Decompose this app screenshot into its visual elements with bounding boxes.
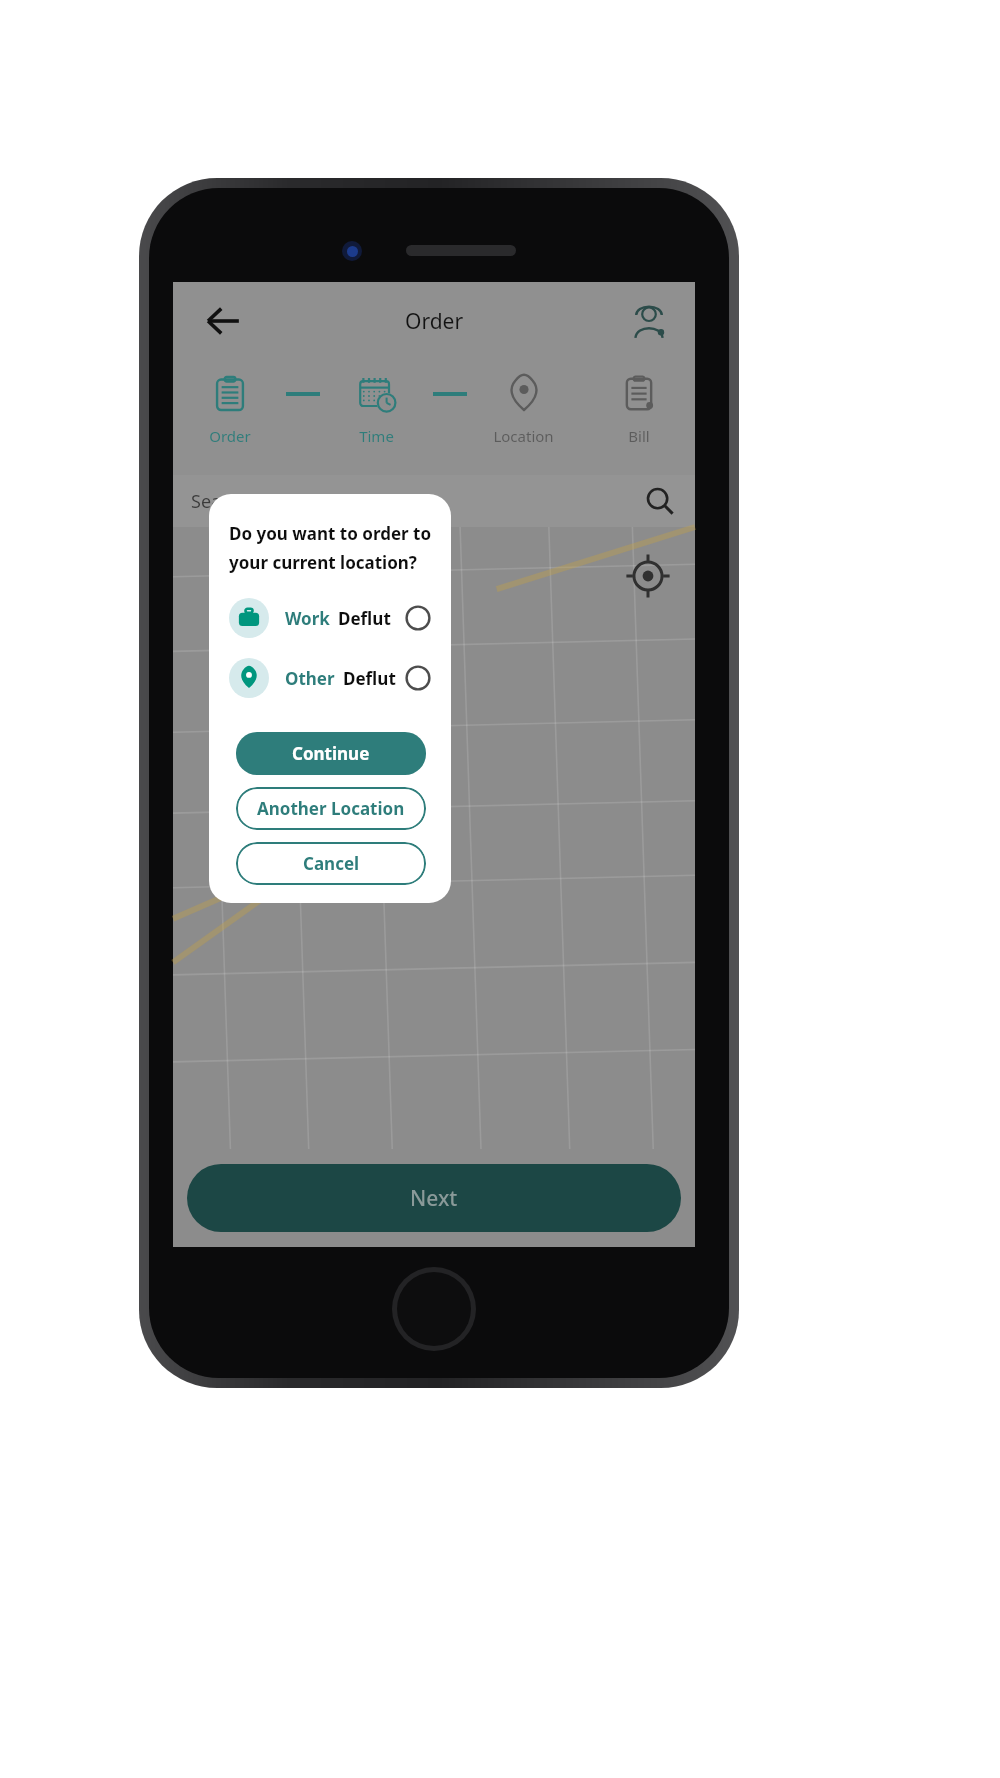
button[interactable]: Next [187, 1164, 681, 1232]
button[interactable]: Work [229, 598, 433, 638]
staticText: Deflut [343, 667, 396, 690]
staticText: Deflut [338, 607, 391, 630]
button[interactable]: Continue [236, 732, 426, 775]
staticText: Order [209, 426, 251, 446]
button[interactable]: Search [645, 486, 675, 516]
staticText: Another Location [257, 797, 405, 820]
staticText: Bill [628, 426, 650, 446]
staticText: Work [285, 607, 330, 630]
button[interactable]: My location [621, 549, 675, 603]
staticText: Cancel [303, 852, 360, 875]
button[interactable]: Support [629, 301, 669, 341]
staticText: Order [405, 307, 464, 336]
staticText: Location [493, 426, 554, 446]
button[interactable]: Another Location [236, 787, 426, 830]
staticText: Next [410, 1184, 458, 1213]
staticText: Search [191, 489, 248, 514]
staticText: Other [285, 667, 335, 690]
button[interactable]: Other [229, 658, 433, 698]
staticText: Do you want to order to your current loc… [229, 522, 433, 574]
staticText: Continue [292, 742, 370, 765]
button[interactable]: Cancel [236, 842, 426, 885]
staticText: Time [359, 426, 394, 446]
button[interactable]: Back [201, 299, 245, 343]
